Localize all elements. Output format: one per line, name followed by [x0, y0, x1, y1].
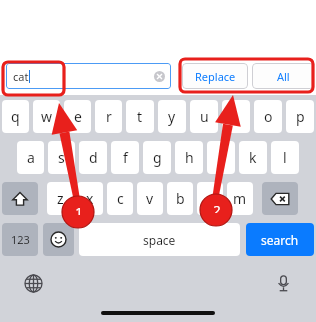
staticText: a — [27, 148, 35, 167]
staticText: s — [58, 148, 65, 167]
staticText: r — [106, 107, 112, 126]
staticText: v — [146, 189, 154, 208]
staticText: q — [11, 107, 20, 126]
button[interactable]: s — [48, 141, 75, 174]
staticText: z — [57, 189, 64, 208]
staticText: t — [137, 107, 143, 126]
button[interactable]: b — [167, 182, 193, 215]
button[interactable]: q — [2, 100, 29, 133]
staticText: l — [283, 148, 287, 167]
staticText: u — [200, 107, 209, 126]
button[interactable]: g — [143, 141, 171, 174]
staticText: Replace — [195, 69, 236, 84]
button[interactable]: e — [64, 100, 91, 133]
staticText: j — [219, 148, 223, 167]
button[interactable]: u — [190, 100, 218, 133]
staticText: k — [249, 148, 257, 167]
staticText: h — [185, 148, 194, 167]
staticText: c — [117, 189, 124, 208]
button[interactable]: a — [17, 141, 44, 174]
button[interactable]: c — [107, 182, 133, 215]
staticText: o — [264, 107, 273, 126]
button[interactable]: z — [47, 182, 73, 215]
staticText: e — [74, 107, 82, 126]
button[interactable]: 123 — [2, 223, 38, 256]
staticText: 123 — [11, 232, 30, 247]
button[interactable]: m — [227, 182, 253, 215]
button[interactable]: Change keyboard — [22, 272, 44, 294]
staticText: n — [206, 189, 215, 208]
staticText: space — [143, 232, 176, 248]
staticText: f — [123, 148, 128, 167]
button[interactable]: o — [254, 100, 282, 133]
button[interactable]: k — [239, 141, 267, 174]
button[interactable]: v — [137, 182, 163, 215]
staticText: b — [176, 189, 185, 208]
button[interactable]: r — [95, 100, 122, 133]
button[interactable]: x — [77, 182, 103, 215]
button[interactable]: Replace — [182, 63, 248, 89]
button[interactable]: h — [175, 141, 203, 174]
staticText: g — [153, 148, 162, 167]
staticText: i — [234, 107, 238, 126]
button[interactable]: Dictation — [272, 272, 294, 294]
staticText: 2 — [213, 201, 221, 213]
staticText: w — [41, 107, 53, 126]
button[interactable]: cat — [6, 63, 171, 89]
staticText: x — [86, 189, 94, 208]
button[interactable]: f — [111, 141, 139, 174]
staticText: p — [296, 107, 305, 126]
button[interactable]: w — [33, 100, 60, 133]
button[interactable]: i — [222, 100, 250, 133]
button[interactable]: n — [197, 182, 223, 215]
button[interactable]: l — [271, 141, 299, 174]
button[interactable]: All — [252, 63, 314, 89]
button[interactable]: j — [207, 141, 235, 174]
button[interactable]: search — [246, 223, 314, 256]
button[interactable]: Emoji — [43, 223, 74, 256]
button[interactable]: d — [79, 141, 107, 174]
staticText: 1 — [75, 203, 83, 215]
staticText: m — [233, 189, 247, 208]
staticText: y — [168, 107, 176, 126]
staticText: d — [89, 148, 98, 167]
button[interactable]: p — [286, 100, 314, 133]
staticText: All — [277, 69, 290, 84]
staticText: search — [261, 232, 299, 248]
button[interactable]: t — [126, 100, 154, 133]
button[interactable]: y — [158, 100, 186, 133]
button[interactable]: Shift — [2, 182, 38, 215]
staticText: cat — [13, 69, 29, 84]
button[interactable]: Backspace — [262, 182, 298, 215]
button[interactable]: space — [79, 223, 240, 256]
